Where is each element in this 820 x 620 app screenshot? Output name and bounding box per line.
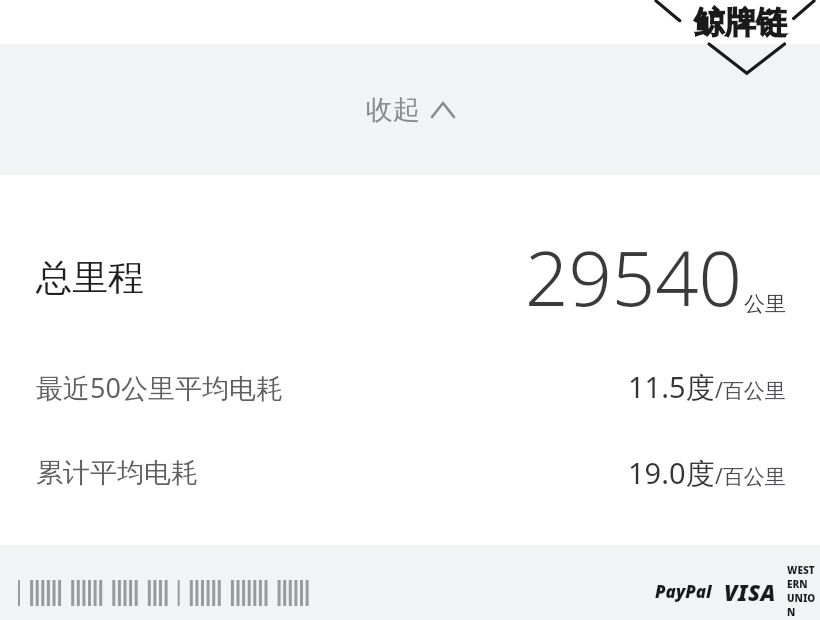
staticText: UNION — [787, 591, 820, 619]
staticText: 收起 — [366, 93, 420, 127]
button[interactable]: 收起 — [342, 83, 478, 137]
staticText: 最近50公里平均电耗 — [36, 369, 283, 406]
staticText: 29540 — [525, 225, 742, 329]
button[interactable]: 最近50公里平均电耗 — [0, 367, 820, 407]
staticText: 公里 — [744, 291, 786, 317]
staticText: 鲸牌链 — [694, 3, 787, 42]
staticText: PayPal — [655, 580, 712, 603]
button[interactable]: 累计平均电耗 — [0, 453, 820, 493]
staticText: 累计平均电耗 — [36, 456, 198, 490]
staticText: WESTERN — [787, 563, 820, 591]
staticText: /百公里 — [715, 462, 786, 491]
button[interactable]: 总里程 — [0, 225, 820, 329]
staticText: 11.5度 — [628, 367, 715, 407]
staticText: 总里程 — [36, 255, 144, 300]
other: Collapse — [432, 103, 454, 117]
staticText: VISA — [724, 577, 776, 607]
staticText: /百公里 — [715, 376, 786, 405]
staticText: 19.0度 — [628, 453, 715, 493]
